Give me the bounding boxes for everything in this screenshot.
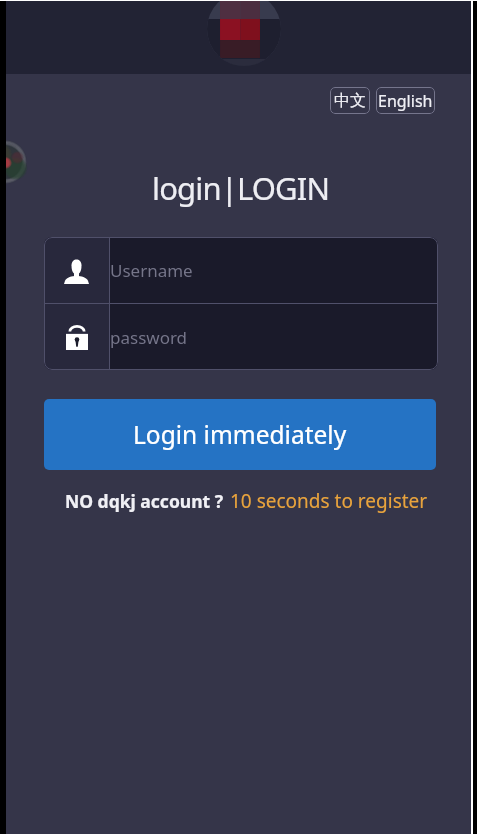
staticText: login|LOGIN — [152, 167, 330, 209]
button[interactable]: 中文 — [330, 87, 370, 114]
button[interactable]: English — [376, 87, 435, 114]
staticText: NO dqkj account ? — [65, 489, 224, 513]
staticText: Login immediately — [133, 418, 347, 451]
staticText: 10 seconds to register — [230, 488, 428, 514]
button[interactable]: 10 seconds to register — [230, 488, 428, 514]
staticText: Username — [110, 259, 193, 282]
staticText: English — [378, 90, 433, 112]
other: User — [64, 257, 89, 284]
staticText: 中文 — [334, 91, 366, 111]
button[interactable]: Login immediately — [44, 399, 436, 470]
other: Password — [66, 325, 88, 350]
staticText: password — [110, 326, 188, 349]
